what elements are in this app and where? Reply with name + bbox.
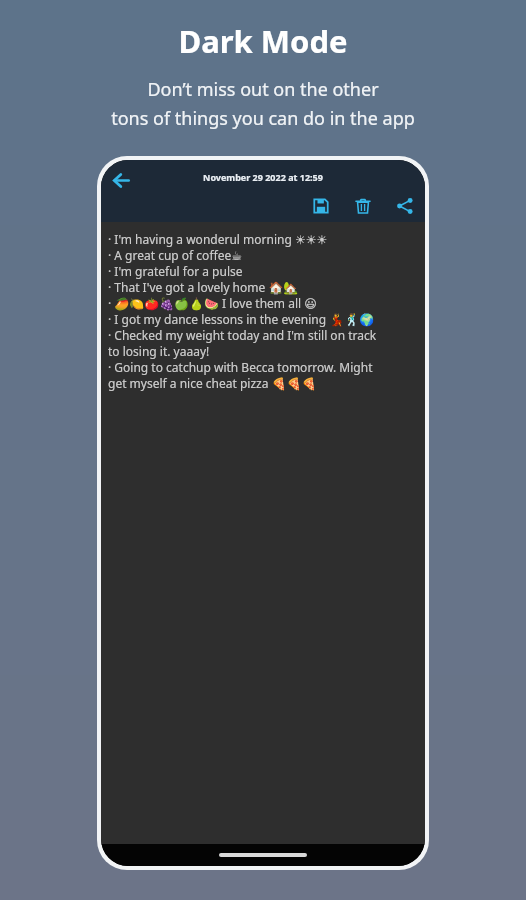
- staticText: Don’t miss out on the other tons of thin…: [111, 77, 415, 130]
- button[interactable]: Share: [392, 193, 418, 219]
- staticText: · A great cup of coffee☕: [108, 247, 242, 263]
- staticText: November 29 2022 at 12:59: [203, 171, 323, 183]
- staticText: · Checked my weight today and I'm still …: [108, 327, 377, 343]
- staticText: get myself a nice cheat pizza 🍕🍕🍕: [108, 375, 317, 391]
- button[interactable]: Save: [308, 193, 334, 219]
- staticText: · Going to catchup with Becca tomorrow. …: [108, 359, 373, 375]
- staticText: · I'm grateful for a pulse: [108, 263, 243, 279]
- staticText: · I got my dance lessons in the evening …: [108, 311, 375, 327]
- button[interactable]: · I'm having a wonderul morning ☀️☀️☀️: [101, 222, 425, 844]
- staticText: · That I've got a lovely home 🏠🏡: [108, 279, 299, 295]
- staticText: Dark Mode: [178, 20, 348, 62]
- staticText: to losing it. yaaay!: [108, 343, 210, 359]
- button[interactable]: Delete: [350, 193, 376, 219]
- button[interactable]: Back: [106, 165, 136, 195]
- staticText: · 🥭🍋🍅🍇🍏🍐🍉 I love them all 😃: [108, 295, 317, 311]
- staticText: · I'm having a wonderul morning ☀️☀️☀️: [108, 231, 328, 247]
